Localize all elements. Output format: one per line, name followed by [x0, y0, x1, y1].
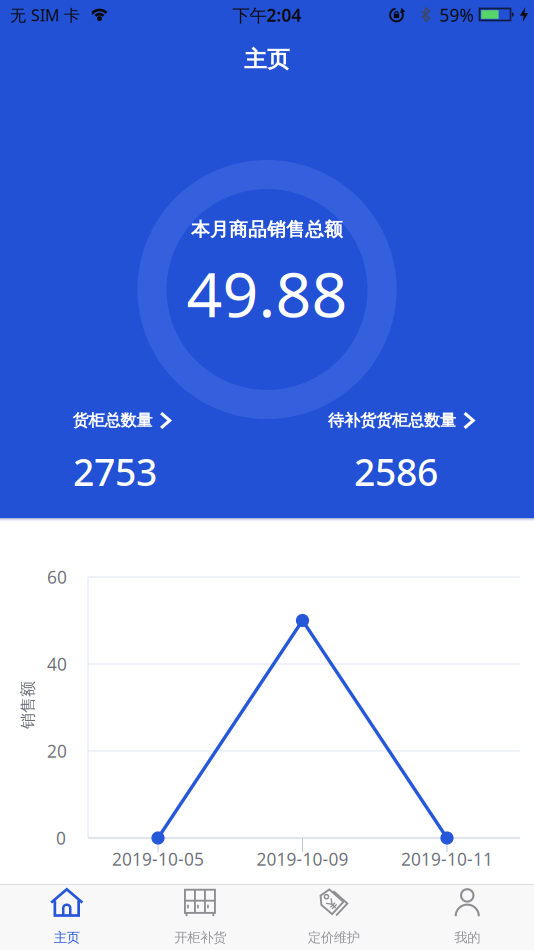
button[interactable]: 货柜总数量 [56, 401, 186, 491]
staticText: 60 [47, 565, 67, 588]
staticText: 49.88 [186, 251, 347, 335]
staticText: 下午2:04 [232, 3, 301, 26]
staticText: 本月商品销售总额 [191, 218, 343, 241]
staticText: 2753 [73, 447, 157, 496]
button[interactable]: 定价维护 [267, 884, 400, 950]
staticText: 0 [56, 826, 66, 849]
button[interactable]: 待补货货柜总数量 [315, 401, 485, 491]
staticText: 2019-10-11 [401, 847, 493, 870]
staticText: 货柜总数量 [72, 411, 152, 430]
staticText: 无 SIM 卡 [10, 4, 80, 26]
staticText: 主页 [244, 46, 290, 73]
staticText: 待补货货柜总数量 [328, 411, 456, 430]
staticText: 40 [47, 652, 67, 675]
staticText: 20 [47, 739, 67, 762]
staticText: 主页 [54, 929, 80, 946]
staticText: 定价维护 [308, 929, 360, 946]
staticText: 2019-10-05 [112, 847, 204, 870]
staticText: 2586 [354, 447, 438, 496]
staticText: 我的 [454, 929, 480, 946]
staticText: 59% [439, 3, 473, 26]
button[interactable]: 我的 [400, 884, 534, 950]
button[interactable]: 主页 [0, 884, 133, 950]
staticText: 销售额 [4, 695, 52, 715]
staticText: 2019-10-09 [256, 847, 348, 870]
button[interactable]: 开柜补货 [133, 884, 267, 950]
staticText: 开柜补货 [174, 929, 226, 946]
